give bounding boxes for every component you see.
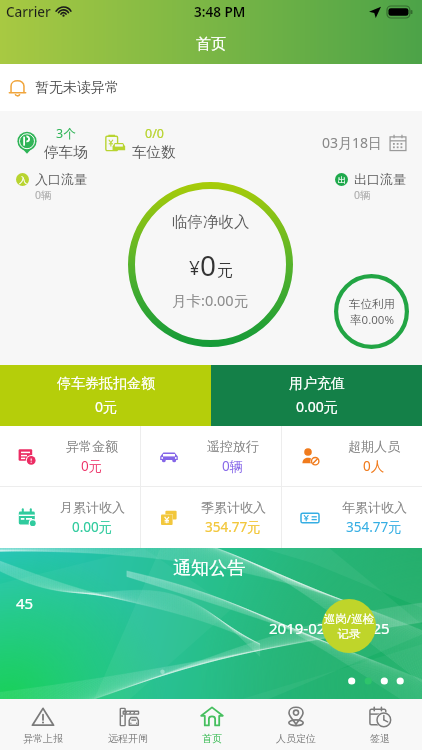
staticText: 入 (19, 175, 27, 185)
button[interactable]: 人员定位 (254, 699, 338, 750)
staticText: 0.00元 (72, 518, 113, 536)
button[interactable]: 季累计收入 (141, 487, 281, 548)
staticText: 首页 (202, 732, 222, 745)
button[interactable]: 遥控放行 (141, 426, 281, 486)
staticText: Carrier (6, 3, 51, 21)
button[interactable]: 异常金额 (0, 426, 140, 486)
staticText: 远程开闸 (108, 732, 148, 745)
button[interactable]: 月累计收入 (0, 487, 140, 548)
staticText: 0辆 (222, 457, 244, 475)
staticText: 0.00元 (296, 397, 338, 416)
button[interactable]: 暂无未读异常 (0, 64, 422, 111)
staticText: 车位数 (132, 143, 176, 161)
staticText: 年累计收入 (342, 499, 407, 515)
staticText: 用户充值 (289, 375, 345, 393)
staticText: 巡岗/巡检 记录 (322, 611, 376, 642)
staticText: 出口流量 (354, 171, 406, 187)
staticText: 异常金额 (66, 438, 118, 454)
button[interactable]: 首页 (170, 699, 254, 750)
staticText: 0/0 (145, 125, 164, 142)
staticText: 0辆 (35, 188, 52, 202)
button[interactable]: 停车券抵扣金额 (0, 365, 211, 426)
button[interactable]: 异常上报 (0, 699, 85, 750)
staticText: 停车场 (44, 143, 88, 161)
staticText: 0辆 (354, 188, 371, 202)
staticText: 出 (338, 175, 346, 185)
staticText: 签退 (370, 732, 390, 745)
button[interactable]: 用户充值 (211, 365, 422, 426)
staticText: 0人 (363, 457, 385, 475)
staticText: 3:48 PM (194, 3, 246, 21)
staticText: 月卡:0.00元 (172, 290, 249, 310)
staticText: ¥ (189, 255, 200, 281)
staticText: 0元 (81, 457, 103, 475)
button[interactable]: 远程开闸 (85, 699, 170, 750)
staticText: 45 (16, 593, 34, 613)
staticText: 暂无未读异常 (35, 79, 119, 97)
staticText: 超期人员 (348, 438, 400, 454)
staticText: 3个 (56, 125, 76, 142)
staticText: 354.77元 (346, 518, 402, 536)
staticText: 车位利用 率0.00% (342, 297, 402, 327)
staticText: 入口流量 (35, 171, 87, 187)
staticText: 元 (217, 261, 233, 281)
staticText: 通知公告 (173, 557, 245, 580)
staticText: 异常上报 (23, 732, 63, 745)
button[interactable]: 签退 (338, 699, 422, 750)
button[interactable]: 巡岗/巡检 记录 (322, 599, 376, 653)
staticText: 月累计收入 (60, 499, 125, 515)
staticText: 2019-02-26 14:25 (269, 618, 390, 638)
button[interactable]: 超期人员 (282, 426, 422, 486)
staticText: 人员定位 (276, 732, 316, 745)
button[interactable]: 年累计收入 (282, 487, 422, 548)
staticText: 临停净收入 (172, 212, 250, 232)
staticText: 354.77元 (205, 518, 261, 536)
staticText: 0 (200, 246, 217, 284)
staticText: 季累计收入 (201, 499, 266, 515)
staticText: 03月18日 (322, 133, 383, 152)
staticText: 停车券抵扣金额 (57, 375, 155, 393)
staticText: 遥控放行 (207, 438, 259, 454)
staticText: 首页 (196, 35, 226, 54)
staticText: 0元 (95, 397, 118, 416)
